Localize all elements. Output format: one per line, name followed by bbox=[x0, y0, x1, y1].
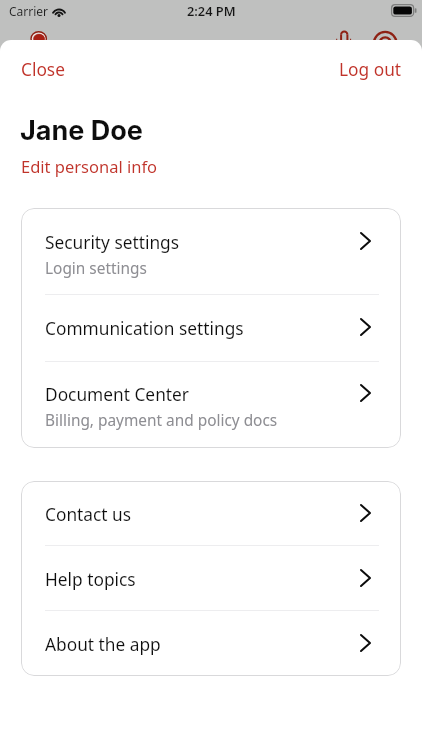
staticText: Document Center bbox=[45, 383, 189, 407]
other: Open bbox=[360, 318, 371, 336]
staticText: Billing, payment and policy docs bbox=[45, 410, 278, 431]
staticText: About the app bbox=[45, 633, 161, 657]
other: Open bbox=[360, 634, 371, 652]
staticText: Close bbox=[21, 58, 65, 82]
other: Open bbox=[360, 384, 371, 402]
button[interactable]: Communication settings bbox=[21, 295, 401, 361]
staticText: Jane Doe bbox=[20, 114, 143, 147]
other: Open bbox=[360, 232, 371, 250]
other: Open bbox=[360, 504, 371, 522]
button[interactable]: About the app bbox=[21, 611, 401, 676]
staticText: Help topics bbox=[45, 568, 136, 592]
other: Battery bbox=[391, 4, 416, 17]
button[interactable]: Close bbox=[0, 50, 77, 90]
button[interactable]: Document Center bbox=[21, 362, 401, 448]
staticText: 2:24 PM bbox=[187, 2, 236, 19]
staticText: Login settings bbox=[45, 258, 147, 279]
button[interactable]: Edit personal info bbox=[9, 149, 170, 183]
staticText: Communication settings bbox=[45, 317, 244, 341]
staticText: Log out bbox=[339, 58, 402, 82]
other: Open bbox=[360, 569, 371, 587]
button[interactable]: Log out bbox=[327, 50, 422, 90]
button[interactable]: Help topics bbox=[21, 546, 401, 610]
staticText: Edit personal info bbox=[21, 155, 158, 177]
staticText: Carrier bbox=[9, 3, 49, 19]
staticText: Contact us bbox=[45, 503, 132, 527]
staticText: Security settings bbox=[45, 231, 180, 255]
button[interactable]: Contact us bbox=[21, 481, 401, 545]
button[interactable]: Security settings bbox=[21, 208, 401, 294]
